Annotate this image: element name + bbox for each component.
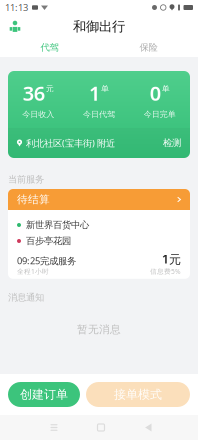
staticText: 36 bbox=[23, 80, 45, 106]
staticText: 代驾 bbox=[40, 42, 58, 53]
staticText: 单 bbox=[101, 84, 109, 94]
staticText: 元 bbox=[46, 84, 54, 94]
staticText: 和御出行 bbox=[73, 18, 125, 35]
button[interactable]: Back bbox=[137, 415, 159, 440]
button[interactable]: 接单模式 bbox=[86, 382, 190, 407]
staticText: 1元 bbox=[162, 251, 181, 267]
button[interactable]: Home bbox=[90, 415, 112, 440]
staticText: 0 bbox=[150, 80, 161, 106]
staticText: 消息通知 bbox=[8, 292, 44, 303]
button[interactable]: 检测 bbox=[159, 134, 185, 152]
staticText: 暂无消息 bbox=[77, 323, 121, 336]
staticText: 待结算 bbox=[17, 193, 50, 206]
staticText: 新世界百货中心 bbox=[26, 219, 89, 231]
staticText: 当前服务 bbox=[8, 174, 44, 185]
staticText: 今日代驾 bbox=[83, 109, 115, 119]
staticText: 全程1小时 bbox=[17, 267, 49, 276]
staticText: 检测 bbox=[163, 137, 181, 149]
staticText: 单 bbox=[162, 84, 170, 94]
button[interactable]: 保险 bbox=[99, 38, 198, 57]
staticText: 利北社区(宝丰街) 附近 bbox=[23, 137, 115, 149]
staticText: 09:25完成服务 bbox=[17, 254, 76, 267]
staticText: 今日完单 bbox=[144, 109, 176, 119]
staticText: 今日收入 bbox=[22, 109, 54, 119]
button[interactable]: 代驾 bbox=[0, 38, 99, 57]
staticText: 11:13 bbox=[5, 1, 28, 14]
button[interactable]: 创建订单 bbox=[8, 382, 80, 407]
staticText: 1 bbox=[89, 80, 100, 106]
button[interactable]: Profile bbox=[2, 15, 28, 37]
button[interactable]: 待结算 bbox=[8, 189, 190, 210]
staticText: 接单模式 bbox=[114, 387, 162, 402]
staticText: 信息费5% bbox=[150, 267, 181, 276]
staticText: 百步亭花园 bbox=[26, 235, 71, 247]
staticText: 保险 bbox=[139, 42, 157, 53]
staticText: 创建订单 bbox=[20, 387, 68, 402]
button[interactable]: Recents bbox=[43, 415, 65, 440]
